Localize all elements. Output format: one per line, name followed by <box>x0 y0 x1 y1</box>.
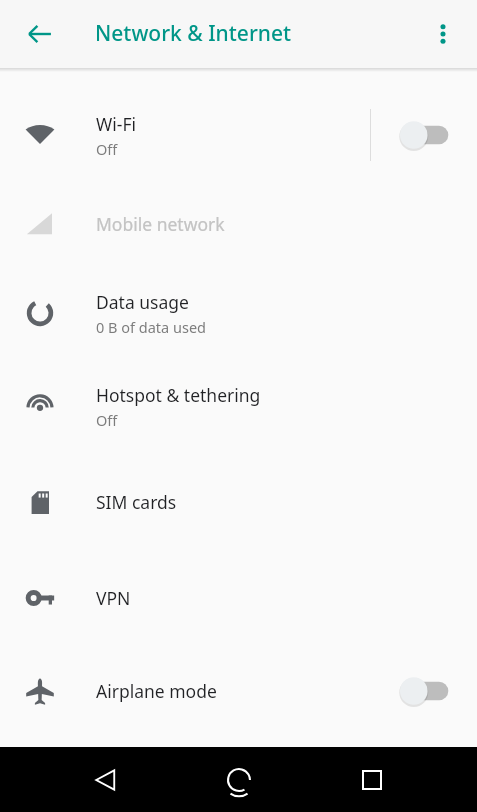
button[interactable]: Recent apps <box>344 752 400 808</box>
button[interactable]: SIM cards <box>0 454 477 550</box>
staticText: SIM cards <box>96 490 177 514</box>
staticText: Network & Internet <box>95 19 292 48</box>
staticText: Airplane mode <box>96 679 217 703</box>
button[interactable]: Mobile network <box>0 180 477 268</box>
button[interactable]: Home <box>211 752 267 808</box>
button[interactable]: Airplane mode toggle <box>371 646 477 736</box>
button[interactable]: Hotspot & tethering <box>0 358 477 454</box>
staticText: Data usage <box>96 290 189 314</box>
button[interactable]: Airplane mode <box>0 646 477 736</box>
staticText: Mobile network <box>96 212 225 236</box>
button[interactable]: Wi-Fi <box>0 72 477 180</box>
button[interactable]: Back <box>77 752 133 808</box>
staticText: Off <box>96 139 118 159</box>
button[interactable]: VPN <box>0 550 477 646</box>
staticText: VPN <box>96 586 131 610</box>
staticText: Off <box>96 410 118 430</box>
staticText: 0 B of data used <box>96 317 206 337</box>
button[interactable]: More options <box>419 10 467 58</box>
staticText: Hotspot & tethering <box>96 383 261 407</box>
staticText: Wi-Fi <box>96 112 137 136</box>
button[interactable]: Wi-Fi toggle <box>371 90 477 180</box>
button[interactable]: Back <box>14 8 66 60</box>
button[interactable]: Data usage <box>0 268 477 358</box>
